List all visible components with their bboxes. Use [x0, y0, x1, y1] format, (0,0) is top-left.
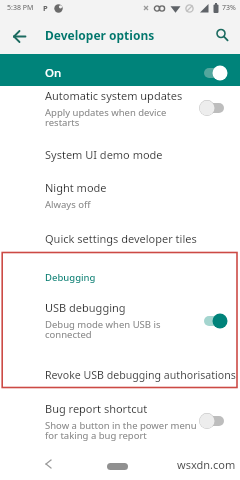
button[interactable] — [8, 23, 32, 47]
button[interactable] — [211, 24, 233, 46]
button[interactable]: Automatic system updates — [0, 86, 240, 130]
button[interactable] — [40, 456, 56, 472]
staticText: 5:38 PM — [7, 3, 34, 13]
staticText: Night mode — [45, 180, 107, 195]
staticText: Debugging — [45, 271, 96, 284]
staticText: Show a button in the power menu for taki… — [45, 419, 190, 440]
staticText: Revoke USB debugging authorisations — [45, 368, 190, 382]
button[interactable]: Revoke USB debugging authorisations — [0, 345, 240, 400]
staticText: Always off — [45, 198, 91, 211]
staticText: Debug mode when USB is connected — [45, 318, 161, 341]
button[interactable]: Night mode — [0, 179, 240, 211]
staticText: Automatic system updates — [45, 88, 183, 103]
button[interactable]: Bug report shortcut — [0, 400, 240, 439]
button[interactable]: System UI demo mode — [0, 130, 240, 179]
button[interactable] — [107, 463, 128, 470]
staticText: System UI demo mode — [45, 147, 163, 162]
staticText: wsxdn.com — [177, 457, 236, 472]
staticText: Developer options — [45, 27, 155, 43]
staticText: On — [45, 65, 62, 81]
staticText: Apply updates when device restarts — [45, 106, 167, 129]
staticText: Bug report shortcut — [45, 401, 148, 416]
staticText: Quick settings developer tiles — [45, 231, 190, 246]
button[interactable]: On — [0, 54, 240, 86]
button[interactable]: Quick settings developer tiles — [0, 211, 240, 265]
staticText: USB debugging — [45, 300, 126, 315]
button[interactable]: USB debugging — [0, 290, 240, 345]
staticText: P — [43, 3, 48, 13]
staticText: 73% — [222, 3, 236, 13]
